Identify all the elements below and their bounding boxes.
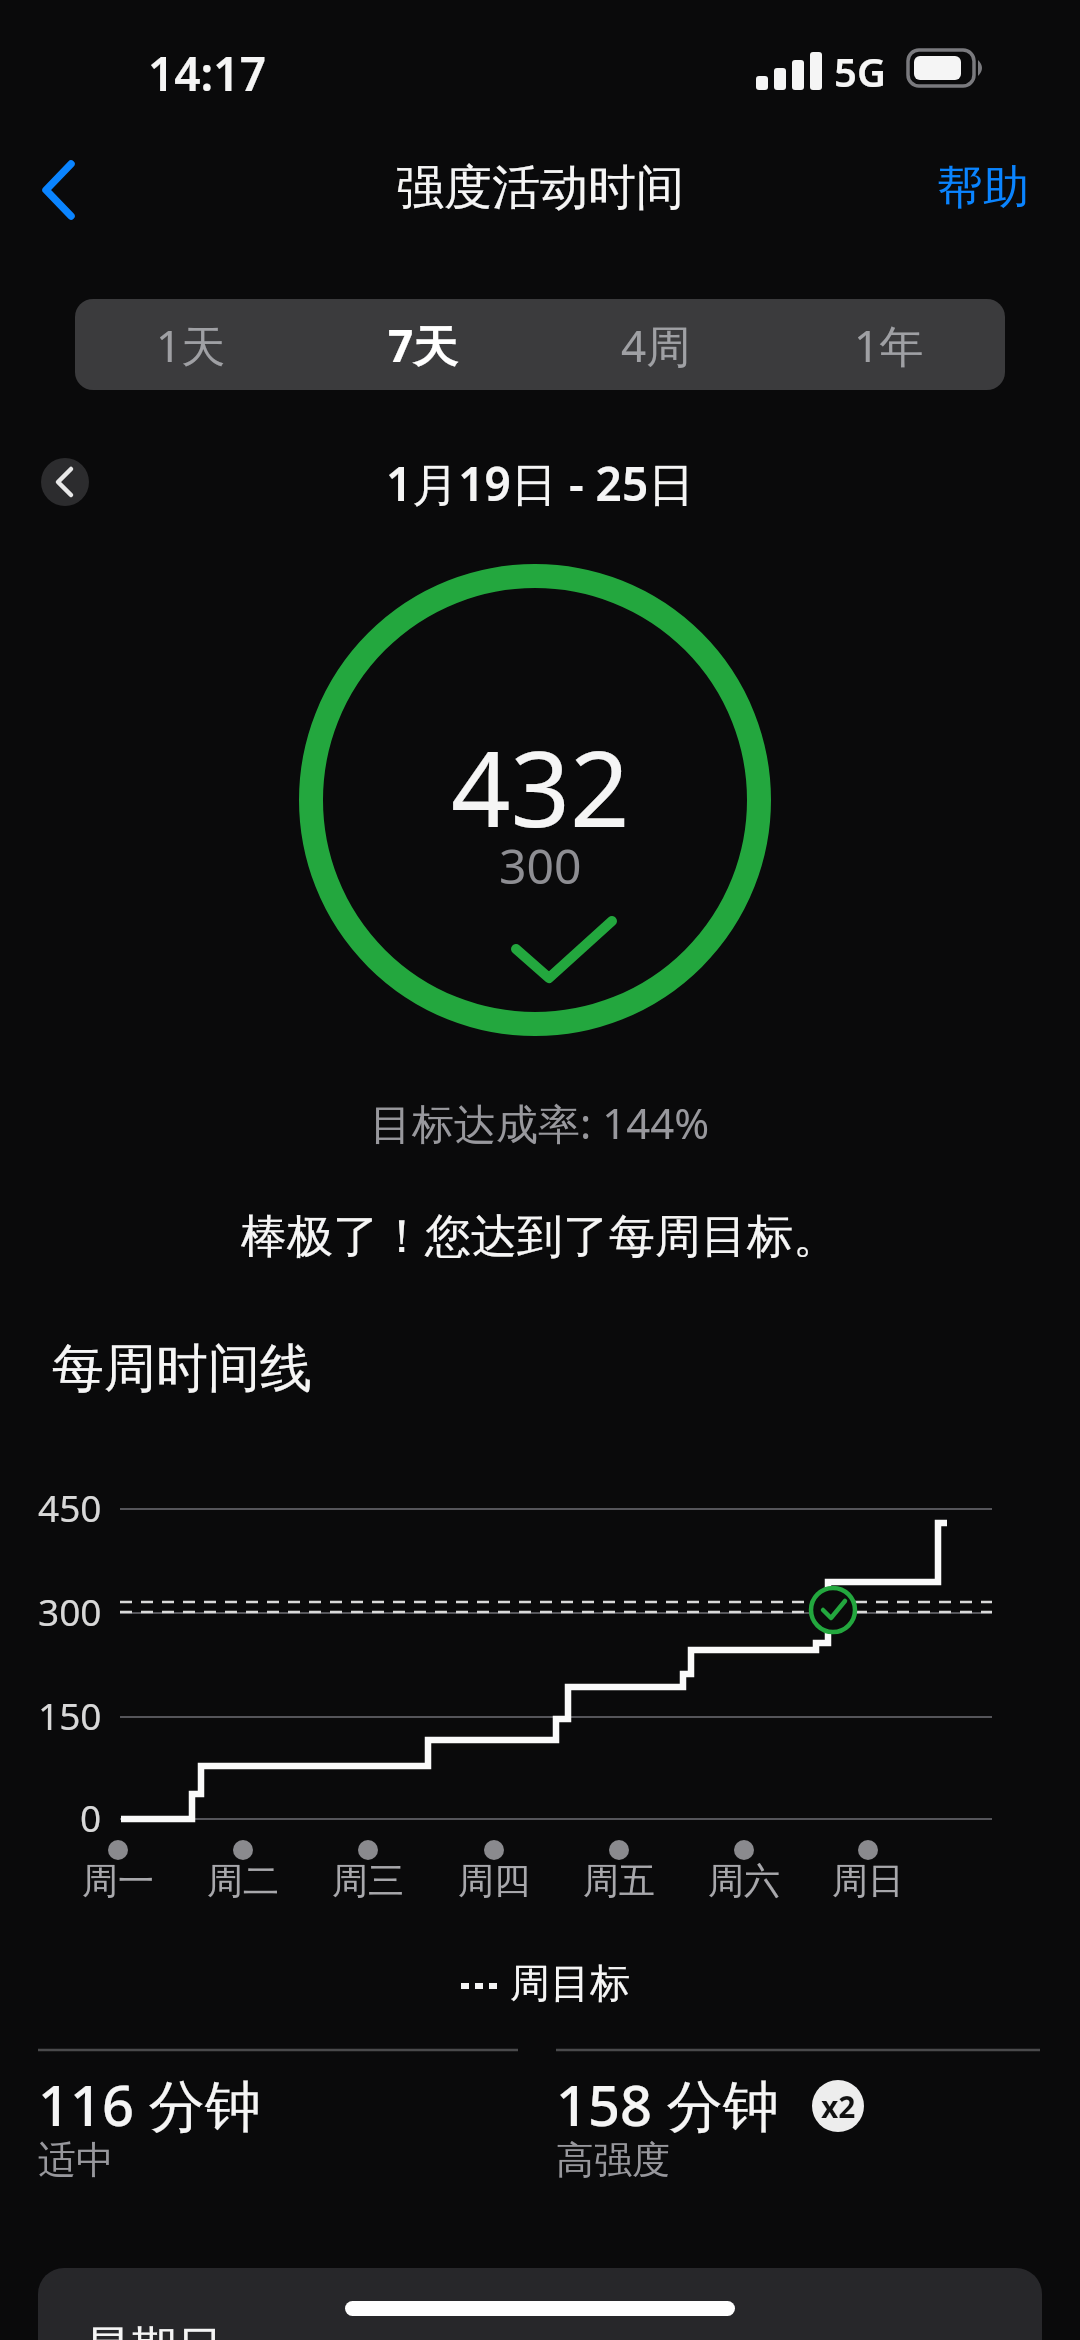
- staticText: 5G: [834, 44, 886, 98]
- button[interactable]: 1年: [772, 299, 1005, 390]
- staticText: x2: [821, 2086, 856, 2127]
- staticText: 周一: [82, 1858, 154, 1903]
- staticText: 周六: [708, 1858, 780, 1903]
- staticText: 158 分钟: [556, 2066, 779, 2142]
- button[interactable]: 帮助: [925, 155, 1040, 221]
- staticText: 目标达成率: 144%: [370, 1094, 710, 1151]
- staticText: 帮助: [937, 159, 1029, 217]
- staticText: 1年: [854, 315, 924, 375]
- staticText: 适中: [38, 2136, 114, 2184]
- staticText: 棒极了！您达到了每周目标。: [241, 1208, 839, 1266]
- button[interactable]: 1天: [75, 299, 307, 390]
- button[interactable]: 星期日: [38, 2268, 1042, 2340]
- staticText: 300: [499, 833, 582, 898]
- button[interactable]: [30, 155, 100, 225]
- staticText: 周三: [332, 1858, 404, 1903]
- staticText: 14:17: [148, 42, 266, 105]
- staticText: 0: [80, 1792, 102, 1842]
- staticText: 7天: [388, 315, 458, 375]
- staticText: 周二: [207, 1858, 279, 1903]
- staticText: 高强度: [556, 2136, 670, 2184]
- staticText: 周五: [583, 1858, 655, 1903]
- staticText: 周目标: [510, 1958, 630, 2008]
- staticText: 450: [38, 1482, 102, 1532]
- button[interactable]: 7天: [307, 299, 539, 390]
- staticText: 每周时间线: [52, 1336, 312, 1402]
- staticText: 1月19日 - 25日: [386, 452, 695, 515]
- staticText: 强度活动时间: [396, 158, 684, 218]
- staticText: 300: [38, 1586, 102, 1636]
- staticText: 1天: [156, 315, 226, 375]
- staticText: 150: [38, 1690, 102, 1740]
- staticText: 周四: [458, 1858, 530, 1903]
- staticText: 432: [451, 716, 630, 858]
- button[interactable]: [41, 458, 89, 506]
- staticText: 周日: [832, 1858, 904, 1903]
- button[interactable]: 4周: [539, 299, 772, 390]
- staticText: 4周: [621, 315, 691, 375]
- staticText: 星期日: [85, 2320, 223, 2340]
- staticText: 116 分钟: [38, 2066, 261, 2142]
